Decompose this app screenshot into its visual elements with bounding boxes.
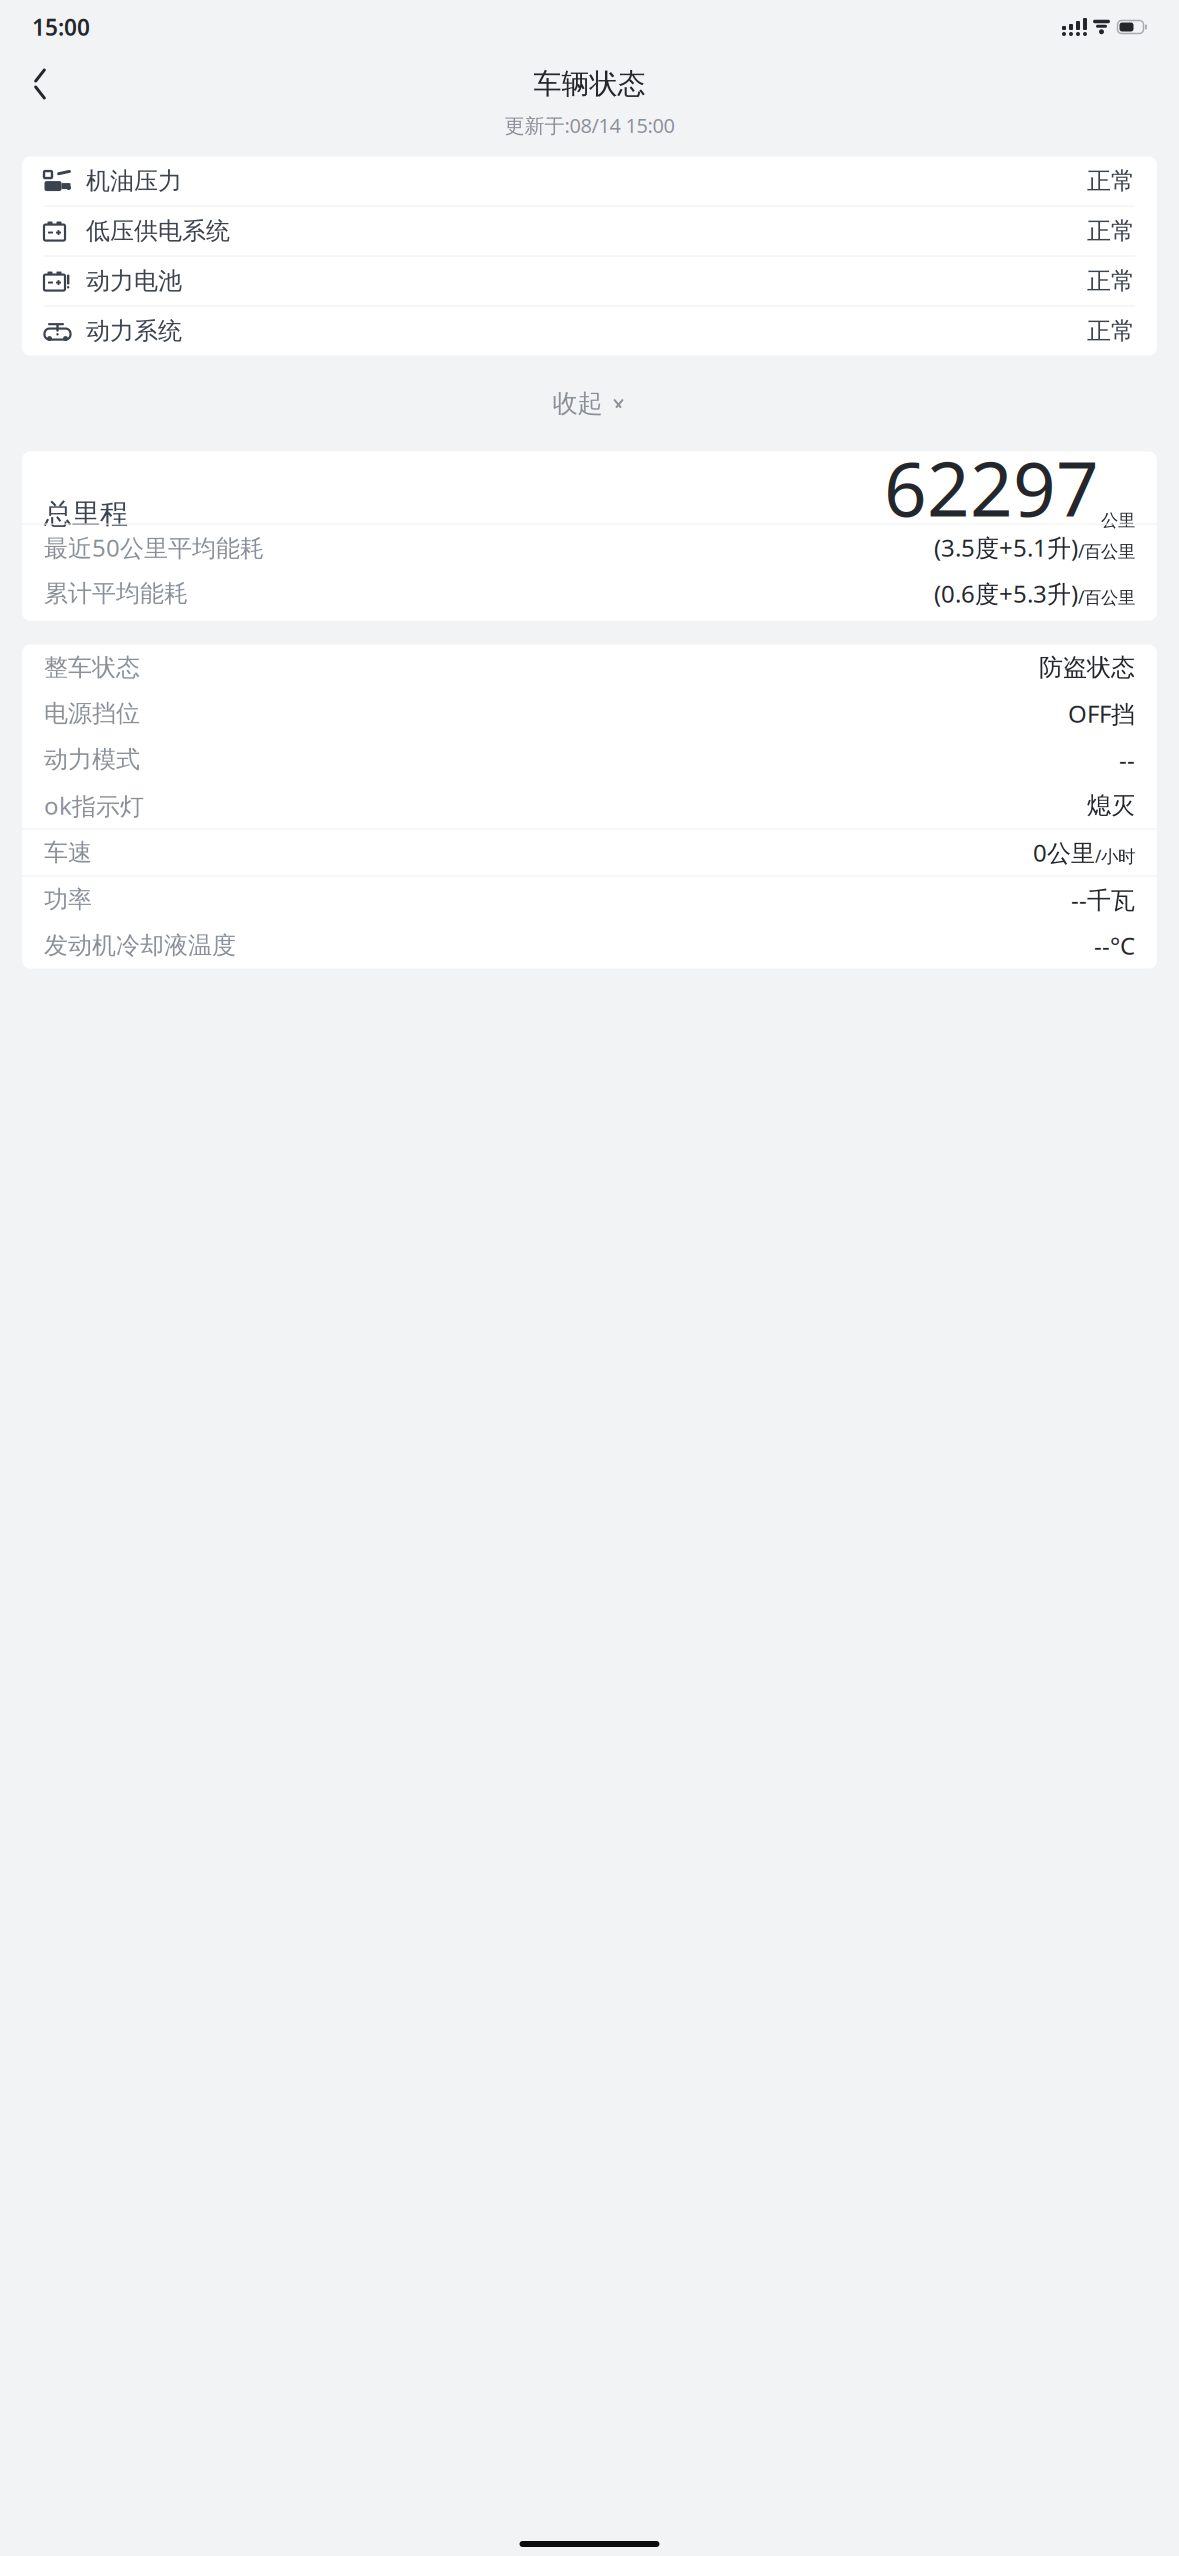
button[interactable]: 机油压力 bbox=[22, 157, 1157, 206]
button[interactable]: 电源挡位 bbox=[22, 691, 1157, 737]
staticText: 更新于:08/14 15:00 bbox=[504, 112, 674, 139]
staticText: 防盗状态 bbox=[1039, 653, 1135, 682]
staticText: 正常 bbox=[1087, 216, 1135, 246]
staticText: 整车状态 bbox=[44, 653, 140, 682]
staticText: 正常 bbox=[1087, 166, 1135, 196]
staticText: 最近50公里平均能耗 bbox=[44, 532, 264, 563]
staticText: --千瓦 bbox=[1071, 884, 1135, 915]
button[interactable]: 车速 bbox=[22, 830, 1157, 876]
staticText: 收起 bbox=[552, 388, 602, 419]
staticText: 低压供电系统 bbox=[86, 216, 230, 246]
button[interactable]: 累计平均能耗 bbox=[22, 571, 1157, 617]
button[interactable]: ok指示灯 bbox=[22, 783, 1157, 829]
staticText: ok指示灯 bbox=[44, 790, 144, 822]
staticText: 15:00 bbox=[32, 12, 90, 42]
staticText: 功率 bbox=[44, 885, 92, 914]
staticText: --°C bbox=[1094, 930, 1135, 961]
button[interactable]: 功率 bbox=[22, 877, 1157, 923]
staticText: 正常 bbox=[1087, 316, 1135, 346]
staticText: 动力电池 bbox=[86, 266, 182, 296]
button[interactable]: 收起 bbox=[534, 382, 644, 426]
staticText: 发动机冷却液温度 bbox=[44, 931, 236, 960]
staticText: 机油压力 bbox=[86, 166, 182, 196]
button[interactable]: 最近50公里平均能耗 bbox=[22, 525, 1157, 571]
button[interactable]: 整车状态 bbox=[22, 645, 1157, 691]
staticText: 车速 bbox=[44, 838, 92, 867]
staticText: -- bbox=[1119, 744, 1135, 775]
button[interactable]: 动力系统 bbox=[22, 307, 1157, 356]
button[interactable]: 返回 bbox=[18, 62, 62, 106]
staticText: /小时 bbox=[1095, 844, 1135, 867]
staticText: 0公里 bbox=[1033, 837, 1095, 868]
staticText: 62297 bbox=[884, 438, 1099, 537]
staticText: 总里程 bbox=[44, 497, 128, 531]
button[interactable]: 动力模式 bbox=[22, 737, 1157, 783]
staticText: (3.5度+5.1升) bbox=[934, 532, 1078, 563]
staticText: 熄灭 bbox=[1087, 791, 1135, 820]
staticText: 动力系统 bbox=[86, 316, 182, 346]
staticText: /百公里 bbox=[1078, 539, 1135, 562]
staticText: /百公里 bbox=[1078, 585, 1135, 608]
staticText: OFF挡 bbox=[1068, 698, 1135, 730]
button[interactable]: 发动机冷却液温度 bbox=[22, 923, 1157, 969]
staticText: 动力模式 bbox=[44, 745, 140, 774]
button[interactable]: 动力电池 bbox=[22, 257, 1157, 306]
button[interactable]: 低压供电系统 bbox=[22, 207, 1157, 256]
staticText: 电源挡位 bbox=[44, 699, 140, 728]
staticText: 车辆状态 bbox=[533, 67, 645, 101]
staticText: 累计平均能耗 bbox=[44, 579, 188, 608]
staticText: 正常 bbox=[1087, 266, 1135, 296]
staticText: (0.6度+5.3升) bbox=[934, 578, 1078, 609]
staticText: 公里 bbox=[1101, 510, 1135, 531]
